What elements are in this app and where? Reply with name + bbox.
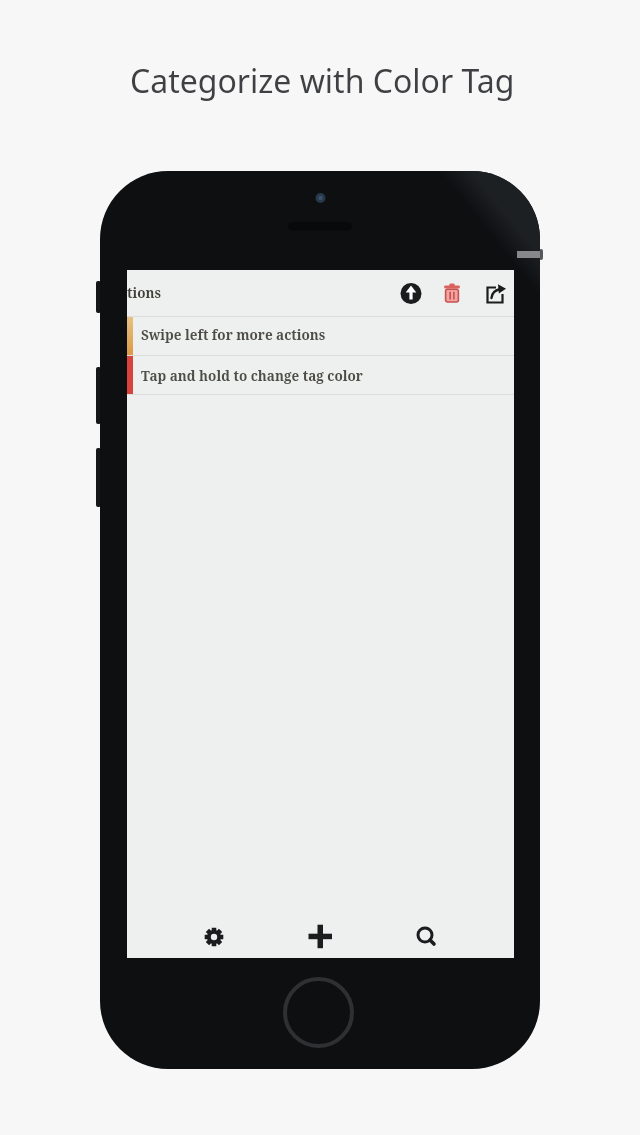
button[interactable]: Tap and hold to change tag color [127, 356, 514, 394]
staticText: Categorize with Color Tag [130, 59, 515, 103]
button[interactable] [415, 925, 439, 949]
staticText: Tap and hold to change tag color [141, 367, 363, 385]
button[interactable] [308, 924, 333, 949]
button[interactable] [400, 282, 422, 304]
button[interactable] [203, 926, 225, 948]
staticText: Swipe left for more actions [141, 326, 326, 344]
button[interactable] [441, 282, 463, 304]
button[interactable] [484, 282, 508, 306]
button[interactable] [283, 977, 354, 1048]
button[interactable]: Swipe left for more actions [127, 317, 514, 355]
staticText: tions [127, 284, 162, 302]
